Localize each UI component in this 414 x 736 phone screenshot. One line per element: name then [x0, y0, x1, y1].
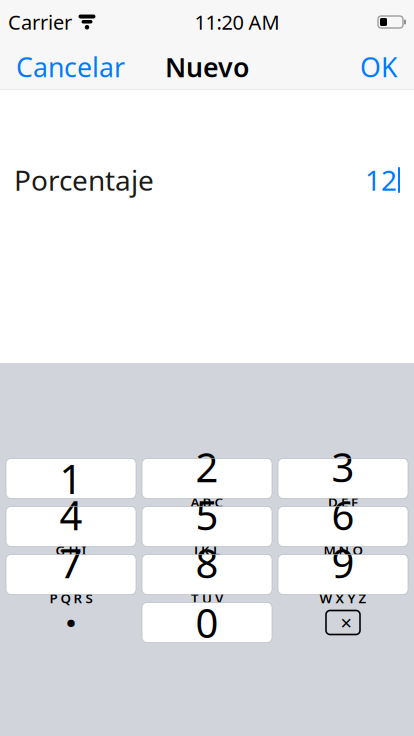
staticText: T U V	[191, 589, 223, 607]
staticText: OK	[360, 49, 398, 85]
button[interactable]: Borrar	[278, 602, 408, 642]
staticText: J K L	[194, 541, 220, 559]
staticText: 8	[195, 536, 218, 589]
staticText: Cancelar	[16, 49, 125, 85]
staticText: Nuevo	[165, 49, 249, 85]
button[interactable]: 2	[142, 458, 272, 498]
staticText: 4	[59, 488, 82, 541]
staticText: Carrier	[8, 9, 72, 35]
staticText: 9	[331, 536, 354, 589]
staticText: ·	[65, 594, 77, 651]
staticText: D E F	[328, 493, 358, 511]
button[interactable]: Punto decimal	[6, 602, 136, 642]
button[interactable]: 4	[6, 506, 136, 546]
staticText: Porcentaje	[14, 161, 154, 199]
staticText: ×	[340, 609, 351, 636]
button[interactable]: Porcentaje	[0, 158, 414, 202]
staticText: M N O	[323, 541, 362, 559]
staticText: 1	[59, 452, 82, 505]
staticText: 5	[195, 488, 218, 541]
staticText: A B C	[190, 493, 223, 511]
button[interactable]: Cancelar	[2, 41, 139, 93]
button[interactable]: 8	[142, 554, 272, 594]
staticText: P Q R S	[49, 589, 92, 607]
staticText: 3	[331, 440, 354, 493]
button[interactable]: 3	[278, 458, 408, 498]
button[interactable]: 1	[6, 458, 136, 498]
button[interactable]: 7	[6, 554, 136, 594]
staticText: 12	[365, 161, 397, 199]
staticText: W X Y Z	[319, 589, 366, 607]
staticText: 2	[195, 440, 218, 493]
staticText: 11:20 AM	[194, 9, 279, 35]
button[interactable]: 5	[142, 506, 272, 546]
staticText: 7	[59, 536, 82, 589]
staticText: G H I	[55, 541, 86, 559]
staticText: 6	[331, 488, 354, 541]
staticText: 0	[195, 596, 218, 649]
button[interactable]: 9	[278, 554, 408, 594]
button[interactable]: OK	[346, 41, 412, 93]
button[interactable]: 6	[278, 506, 408, 546]
button[interactable]: 0	[142, 602, 272, 642]
